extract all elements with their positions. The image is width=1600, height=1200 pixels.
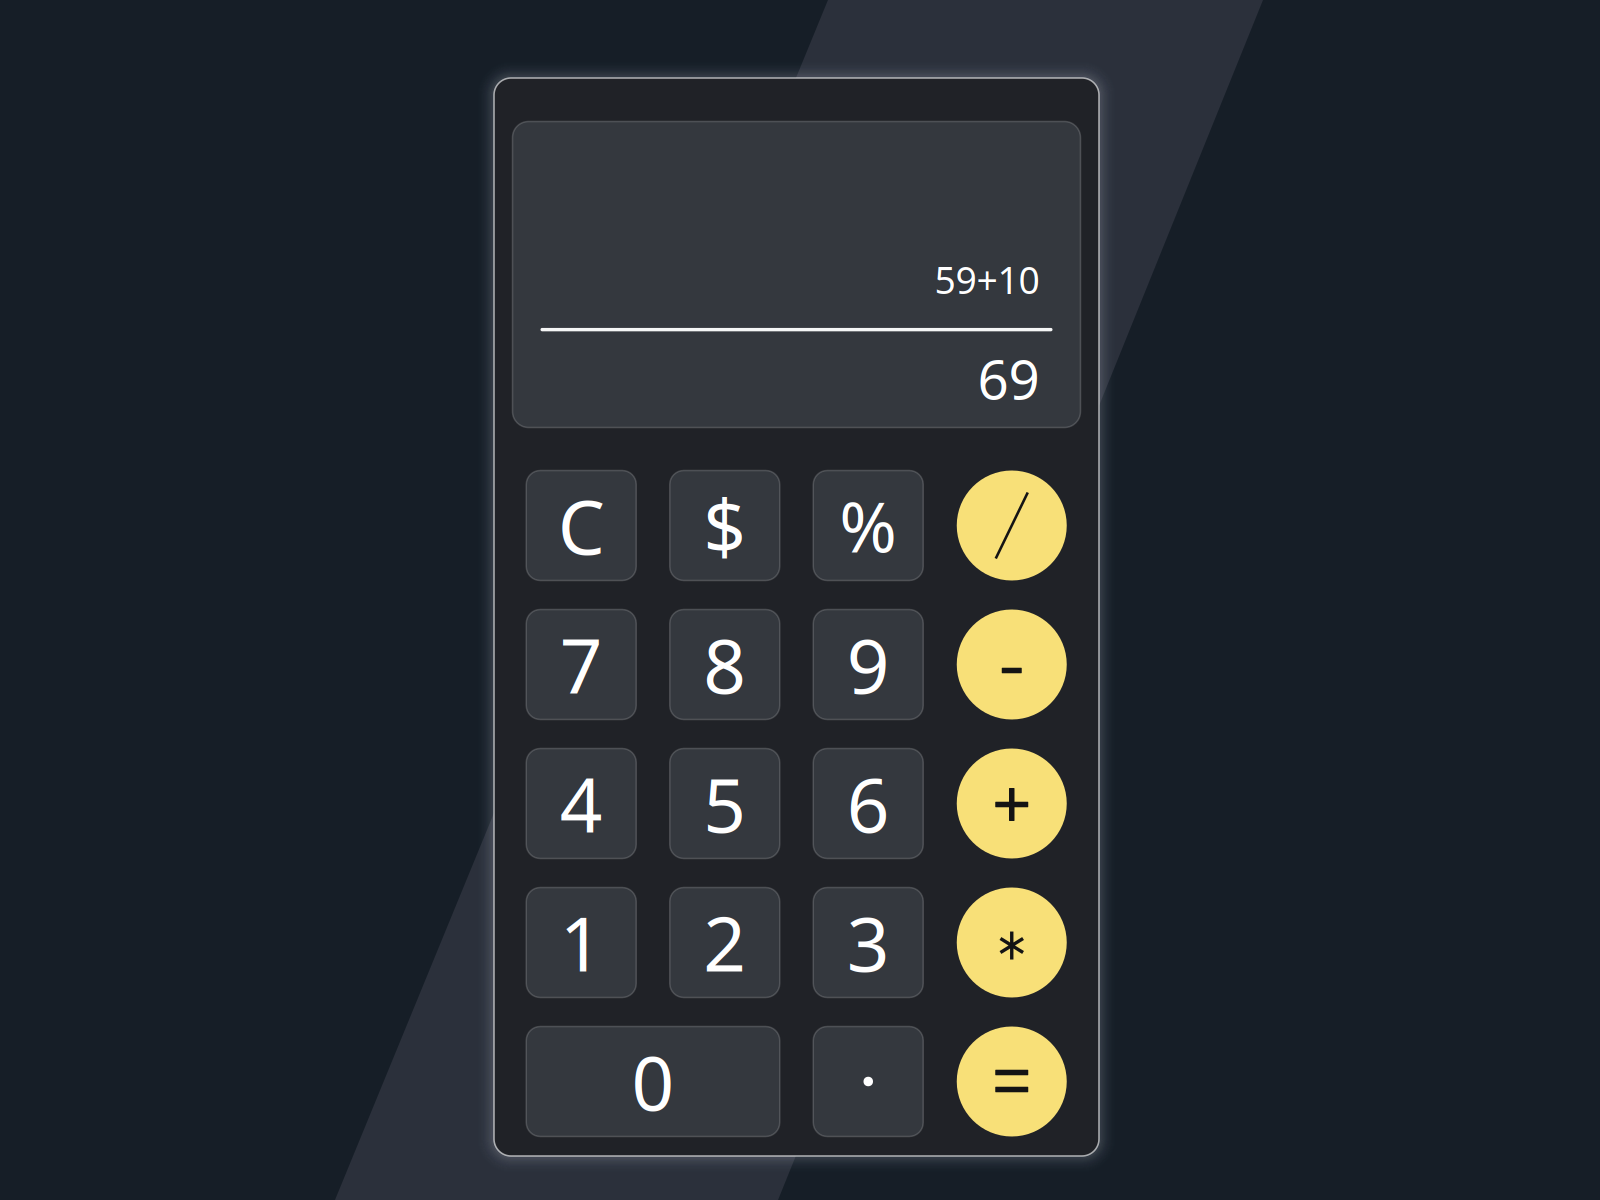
- staticText: 6: [847, 754, 890, 853]
- staticText: 9: [847, 615, 890, 714]
- button[interactable]: Equals: [957, 1026, 1067, 1136]
- button[interactable]: C: [526, 470, 636, 580]
- button[interactable]: 7: [526, 609, 636, 719]
- staticText: 1: [560, 893, 603, 992]
- button[interactable]: $: [670, 470, 780, 580]
- staticText: C: [558, 476, 605, 575]
- staticText: 4: [560, 754, 603, 853]
- staticText: 7: [560, 615, 603, 714]
- button[interactable]: 3: [813, 887, 923, 997]
- staticText: 59+10: [934, 255, 1039, 304]
- staticText: 8: [703, 615, 746, 714]
- button[interactable]: Divide: [957, 470, 1067, 580]
- staticText: 69: [977, 342, 1039, 414]
- button[interactable]: 1: [526, 887, 636, 997]
- button[interactable]: 5: [670, 748, 780, 858]
- button[interactable]: 2: [670, 887, 780, 997]
- button[interactable]: Minus: [957, 609, 1067, 719]
- button[interactable]: Plus: [957, 748, 1067, 858]
- button[interactable]: 6: [813, 748, 923, 858]
- button[interactable]: 0: [526, 1026, 780, 1136]
- staticText: 5: [703, 754, 746, 853]
- staticText: 0: [631, 1032, 674, 1131]
- button[interactable]: Multiply: [957, 887, 1067, 997]
- staticText: 3: [847, 893, 890, 992]
- staticText: 2: [703, 893, 746, 992]
- button[interactable]: 9: [813, 609, 923, 719]
- staticText: %: [839, 479, 897, 572]
- button[interactable]: 4: [526, 748, 636, 858]
- button[interactable]: Decimal point: [813, 1026, 923, 1136]
- staticText: $: [703, 476, 746, 575]
- button[interactable]: %: [813, 470, 923, 580]
- button[interactable]: 8: [670, 609, 780, 719]
